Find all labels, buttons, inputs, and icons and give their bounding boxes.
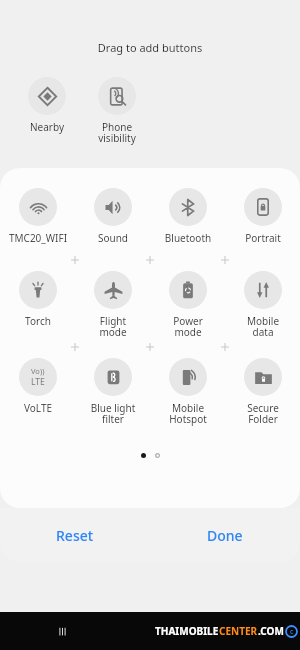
staticText: CENTER	[219, 624, 258, 638]
button[interactable]: Wi-Fi	[3, 188, 73, 245]
staticText: Vo))	[31, 366, 45, 376]
button[interactable]: Flight mode	[78, 271, 148, 339]
button[interactable]: Done	[150, 508, 300, 562]
other: Torch	[29, 281, 47, 299]
other: Nearby	[38, 87, 57, 106]
button[interactable]: Phone visibility	[82, 77, 152, 145]
button[interactable]: Bluetooth	[153, 188, 223, 245]
button[interactable]: Nearby	[12, 77, 82, 134]
other: Sound	[104, 198, 123, 217]
staticText: THAIMOBILE	[155, 624, 219, 638]
button[interactable]: Recent apps	[56, 625, 69, 638]
button[interactable]: Sound	[78, 188, 148, 245]
button[interactable]: VoLTE	[3, 358, 73, 415]
button[interactable]: Torch	[3, 271, 73, 328]
button[interactable]: Reset	[0, 508, 150, 562]
other: Secure Folder	[254, 368, 273, 387]
staticText: Phone visibility	[82, 120, 152, 145]
other: Flight mode	[104, 281, 123, 300]
other: Phone visibility	[108, 87, 127, 106]
staticText: TMC20_WIFI	[3, 231, 73, 245]
other: Power mode	[179, 281, 197, 299]
button[interactable]: Mobile data	[228, 271, 298, 339]
other: Mobile Hotspot	[179, 368, 198, 387]
staticText: c	[290, 627, 294, 637]
staticText: Nearby	[12, 120, 82, 134]
other: Mobile data	[254, 281, 272, 299]
staticText: Mobile data	[228, 314, 298, 339]
other: Bluetooth	[179, 198, 198, 217]
staticText: Reset	[56, 526, 94, 545]
staticText: Drag to add buttons	[0, 40, 300, 55]
staticText: LTE	[31, 376, 45, 388]
other: Blue light filter	[104, 368, 123, 387]
staticText: Portrait	[228, 231, 298, 245]
button[interactable]: Portrait	[228, 188, 298, 245]
other: Portrait	[254, 198, 272, 216]
staticText: Power mode	[153, 314, 223, 339]
staticText: Mobile Hotspot	[153, 401, 223, 426]
button[interactable]: Mobile Hotspot	[153, 358, 223, 426]
button[interactable]: Blue light filter	[78, 358, 148, 426]
staticText: Torch	[3, 314, 73, 328]
other: Wi-Fi	[29, 198, 48, 217]
staticText: .COM	[258, 624, 284, 638]
staticText: Sound	[78, 231, 148, 245]
button[interactable]: Secure Folder	[228, 358, 298, 426]
staticText: Flight mode	[78, 314, 148, 339]
staticText: Secure Folder	[228, 401, 298, 426]
staticText: Done	[207, 526, 243, 545]
other: VoLTE	[31, 366, 45, 388]
staticText: Blue light filter	[78, 401, 148, 426]
staticText: VoLTE	[3, 401, 73, 415]
staticText: Bluetooth	[153, 231, 223, 245]
button[interactable]: Power mode	[153, 271, 223, 339]
